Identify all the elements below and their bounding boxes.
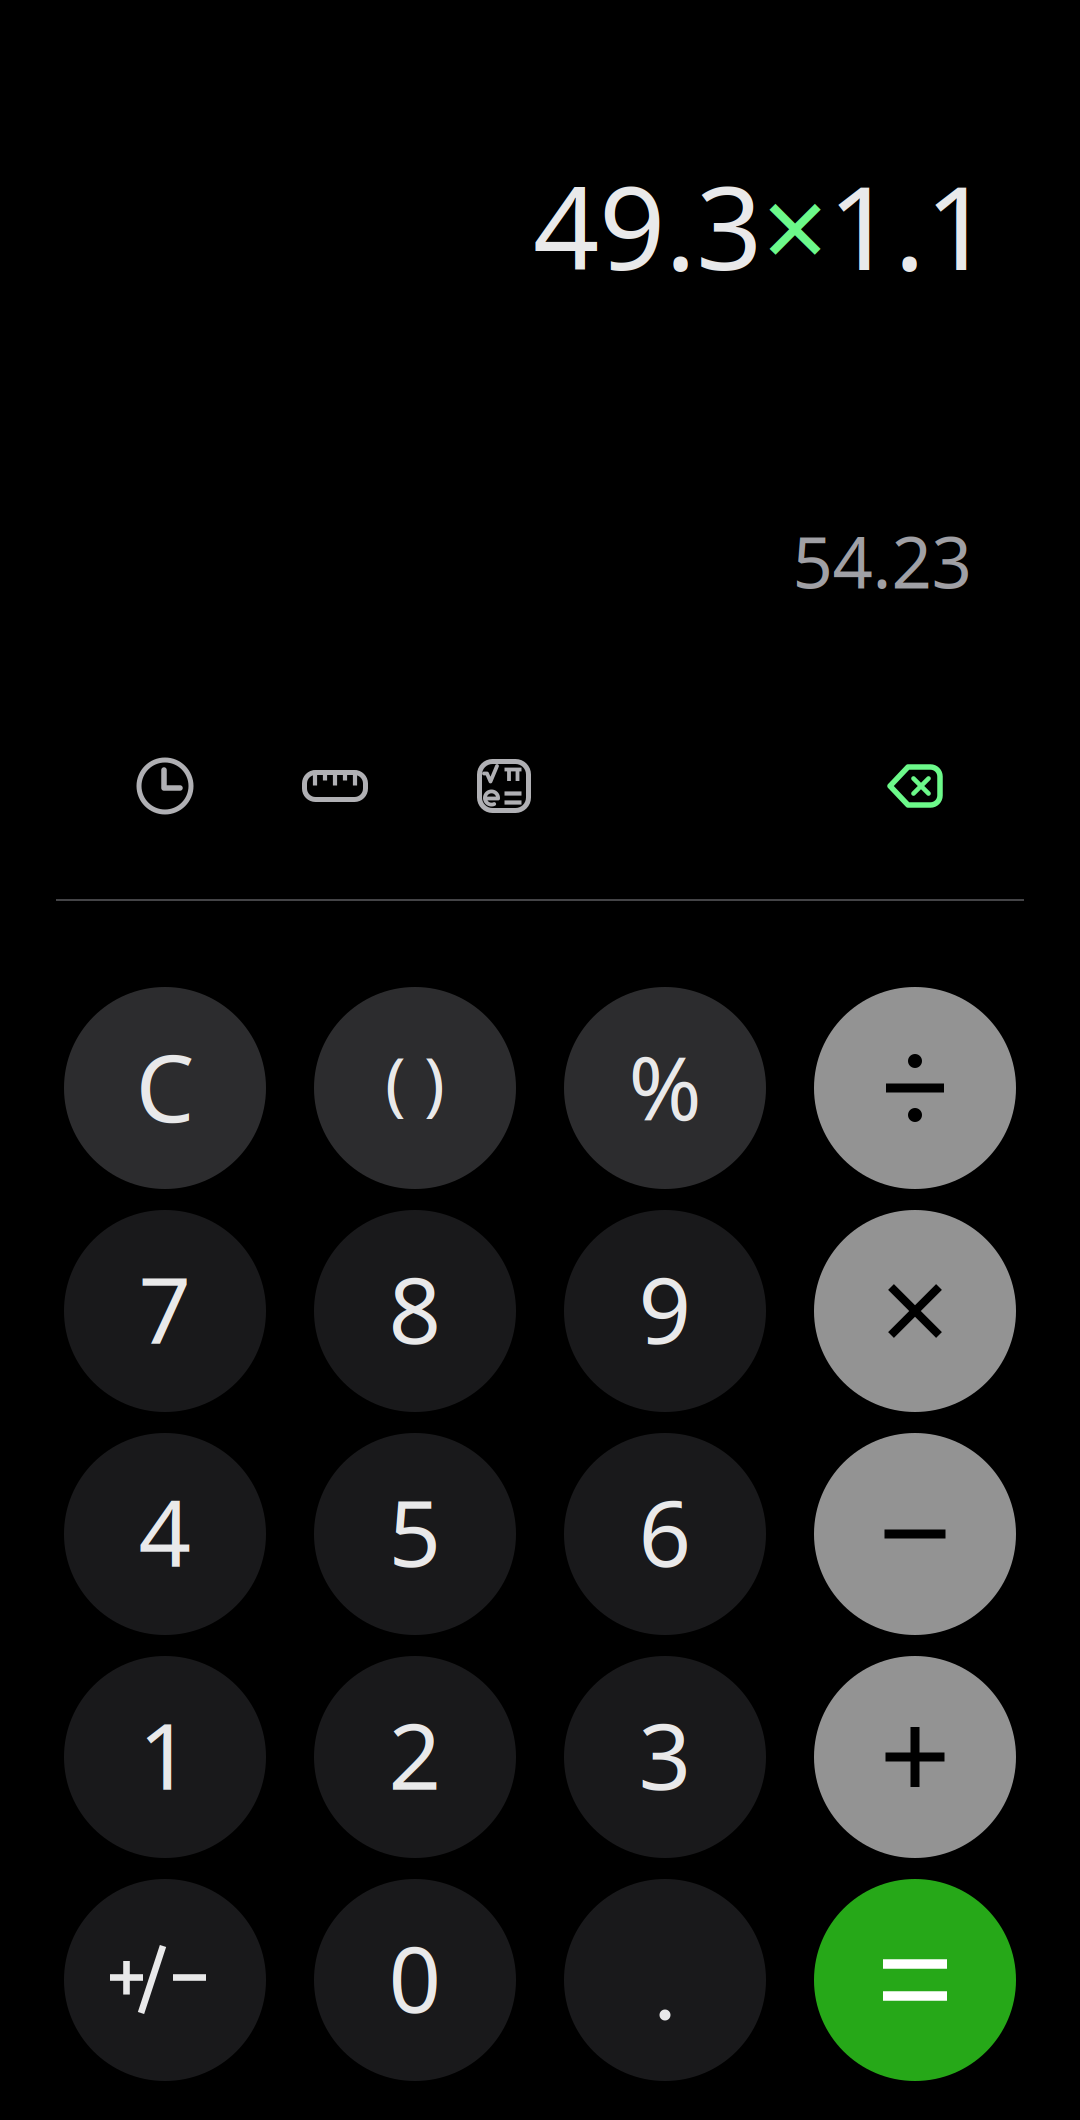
button[interactable]: Percent bbox=[564, 987, 766, 1189]
button[interactable]: 6 bbox=[564, 1433, 766, 1635]
button[interactable]: 7 bbox=[64, 1210, 266, 1412]
staticText: % bbox=[628, 1028, 701, 1144]
button[interactable]: Multiply bbox=[814, 1210, 1016, 1412]
button[interactable]: Scientific calculator bbox=[454, 736, 554, 836]
button[interactable]: History bbox=[115, 736, 215, 836]
staticText: 4 bbox=[138, 1470, 191, 1592]
button[interactable]: Parentheses bbox=[314, 987, 516, 1189]
button[interactable]: Plus or minus bbox=[64, 1879, 266, 2081]
button[interactable]: Clear bbox=[64, 987, 266, 1189]
staticText: 6 bbox=[638, 1470, 691, 1592]
staticText: 1.1 bbox=[828, 148, 991, 302]
staticText: 1 bbox=[138, 1693, 191, 1815]
button[interactable]: 9 bbox=[564, 1210, 766, 1412]
staticText: 7 bbox=[138, 1247, 191, 1369]
button[interactable]: Subtract bbox=[814, 1433, 1016, 1635]
staticText: × bbox=[762, 148, 828, 302]
button[interactable]: 2 bbox=[314, 1656, 516, 1858]
button[interactable]: 4 bbox=[64, 1433, 266, 1635]
button[interactable]: Divide bbox=[814, 987, 1016, 1189]
button[interactable]: Add bbox=[814, 1656, 1016, 1858]
button[interactable]: Equals bbox=[814, 1879, 1016, 2081]
button[interactable]: Delete bbox=[865, 736, 965, 836]
button[interactable]: 0 bbox=[314, 1879, 516, 2081]
staticText: 8 bbox=[388, 1247, 441, 1369]
staticText: ( ) bbox=[385, 1035, 445, 1127]
staticText: 0 bbox=[388, 1916, 441, 2038]
staticText: 49.3 bbox=[533, 148, 762, 302]
button[interactable]: 1 bbox=[64, 1656, 266, 1858]
button[interactable]: Decimal point bbox=[564, 1879, 766, 2081]
staticText: C bbox=[135, 1024, 194, 1148]
staticText: 2 bbox=[388, 1693, 441, 1815]
staticText: 9 bbox=[638, 1247, 691, 1369]
staticText: 3 bbox=[638, 1693, 691, 1815]
button[interactable]: Unit conversion bbox=[285, 736, 385, 836]
button[interactable]: 8 bbox=[314, 1210, 516, 1412]
button[interactable]: 3 bbox=[564, 1656, 766, 1858]
button[interactable]: 5 bbox=[314, 1433, 516, 1635]
staticText: 5 bbox=[388, 1470, 441, 1592]
staticText: 54.23 bbox=[792, 514, 971, 608]
